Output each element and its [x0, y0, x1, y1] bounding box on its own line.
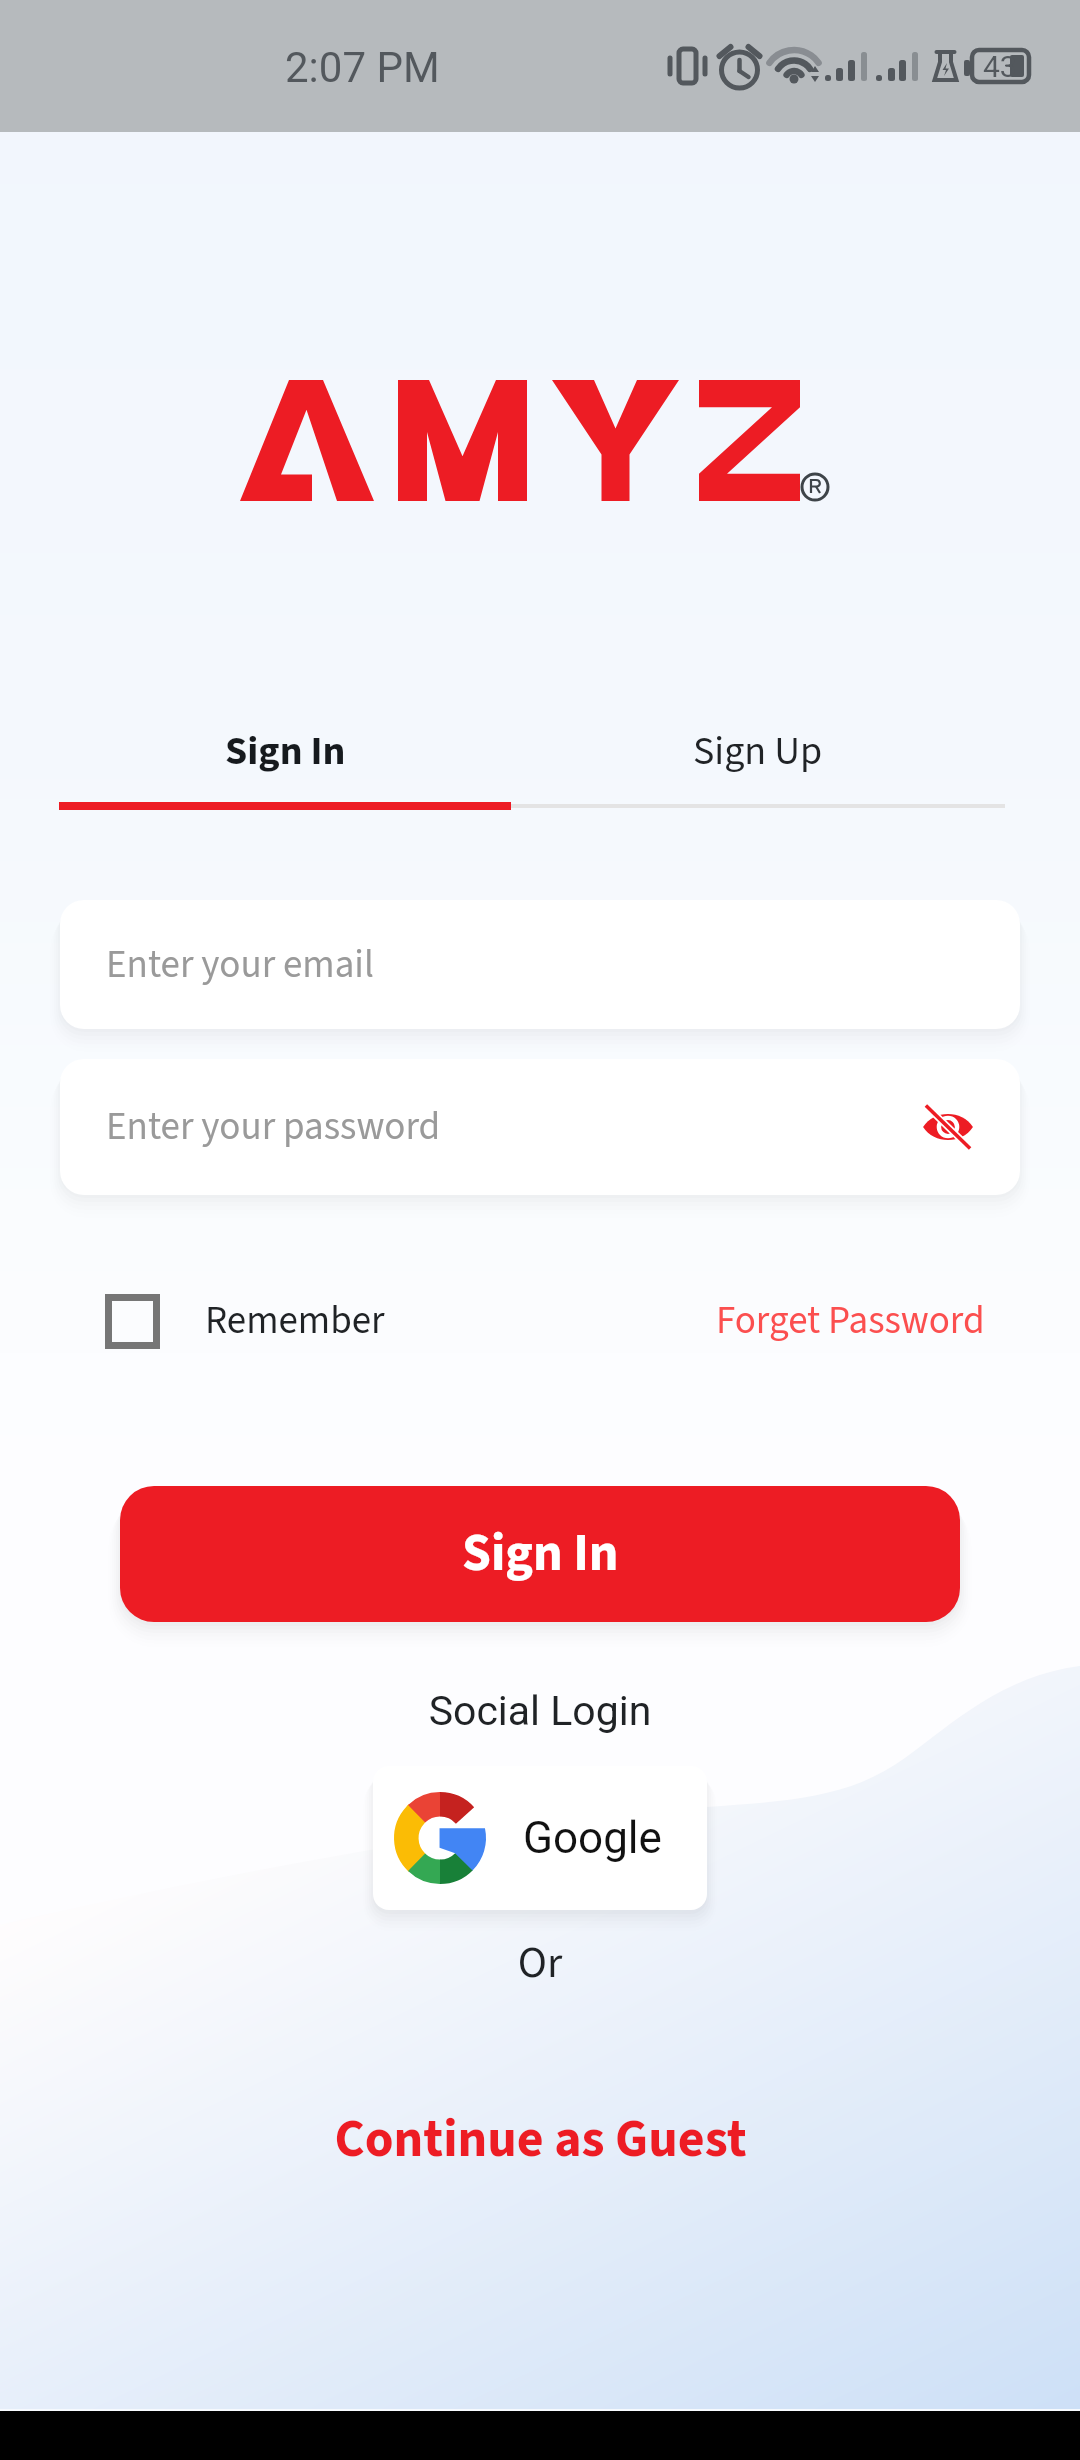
staticText: Google [523, 1812, 662, 1864]
button[interactable]: Enter your email [60, 900, 1020, 1029]
staticText: Sign In [462, 1517, 619, 1591]
button[interactable]: Sign In [59, 719, 511, 783]
staticText: 2:07 PM [285, 43, 440, 92]
staticText: Continue as Guest [334, 2103, 747, 2177]
button[interactable]: Toggle password visibility [909, 1088, 987, 1166]
staticText: Social Login [0, 1687, 1080, 1735]
button[interactable]: Forget Password [716, 1293, 985, 1349]
button[interactable]: Continue as Guest [0, 2103, 1080, 2177]
staticText: Sign In [225, 723, 346, 780]
button[interactable]: Enter your password [60, 1059, 1020, 1195]
staticText: Enter your password [106, 1099, 441, 1155]
staticText: Enter your email [106, 937, 374, 993]
staticText: Or [0, 1932, 1080, 1995]
staticText: 43 [983, 49, 1017, 84]
button[interactable]: Sign Up [511, 719, 1005, 783]
button[interactable]: Sign In [120, 1486, 960, 1622]
button[interactable]: Remember [105, 1293, 385, 1349]
staticText: Sign Up [693, 723, 823, 780]
button[interactable]: Google [373, 1766, 707, 1910]
staticText: Remember [205, 1293, 385, 1349]
staticText: Forget Password [716, 1293, 985, 1349]
